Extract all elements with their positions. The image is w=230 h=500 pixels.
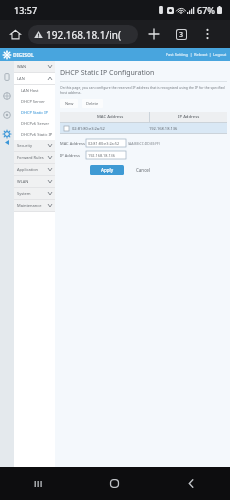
button[interactable]: Back bbox=[153, 467, 230, 500]
button[interactable]: New tab bbox=[144, 24, 164, 44]
button[interactable]: Tabs: 3 bbox=[171, 24, 191, 44]
staticText: IP Address bbox=[178, 114, 200, 120]
staticText: MAC Address bbox=[60, 141, 86, 146]
staticText: DHCP Static IP bbox=[21, 110, 48, 115]
button[interactable]: Apply bbox=[90, 165, 124, 175]
button[interactable]: Reboot bbox=[194, 52, 208, 57]
staticText: (AA:BB:CC:DD:EE:FF) bbox=[128, 141, 160, 146]
staticText: MAC Address bbox=[97, 114, 124, 120]
button[interactable]: Network bbox=[1, 90, 13, 102]
button[interactable]: Fast Setting bbox=[166, 52, 189, 57]
staticText: Security bbox=[17, 143, 48, 148]
staticText: Delete bbox=[86, 101, 99, 106]
staticText: | bbox=[189, 52, 194, 57]
staticText: DHCP Server bbox=[21, 99, 45, 104]
staticText: LAN Host bbox=[21, 88, 39, 93]
button[interactable]: Select row bbox=[60, 123, 227, 133]
button[interactable]: LAN bbox=[14, 73, 55, 84]
button[interactable]: Status bbox=[1, 71, 13, 83]
staticText: New bbox=[65, 101, 74, 106]
button[interactable]: WLAN bbox=[14, 176, 55, 187]
button[interactable]: Maintenance Diagnos... bbox=[14, 200, 55, 211]
staticText: DIGISOL bbox=[13, 52, 34, 59]
button[interactable]: Home bbox=[76, 467, 153, 500]
button[interactable]: Forward Rules bbox=[14, 152, 55, 163]
button[interactable]: Home bbox=[5, 24, 25, 44]
staticText: Forward Rules bbox=[17, 155, 48, 160]
staticText: 67% bbox=[197, 4, 215, 16]
button[interactable]: Settings bbox=[1, 128, 13, 140]
staticText: | bbox=[208, 52, 213, 57]
staticText: 3 bbox=[179, 30, 184, 39]
button[interactable]: Select row bbox=[64, 126, 69, 131]
button[interactable]: LAN Host bbox=[14, 85, 55, 96]
staticText: LAN bbox=[17, 76, 48, 81]
staticText: Apply bbox=[101, 167, 114, 173]
staticText: Maintenance Diagnos... bbox=[17, 203, 48, 208]
staticText: 02:81:80:e3:2a:52 bbox=[88, 141, 120, 146]
button[interactable]: Delete bbox=[82, 99, 103, 108]
button[interactable]: Security bbox=[14, 140, 55, 151]
button[interactable]: System Management bbox=[14, 188, 55, 199]
button[interactable]: Recent apps bbox=[0, 467, 76, 500]
button[interactable]: 192.168.18.136 bbox=[86, 151, 126, 159]
staticText: System Management bbox=[17, 191, 48, 196]
staticText: IP Address bbox=[60, 153, 86, 158]
staticText: DHCPv6 Server bbox=[21, 121, 50, 126]
button[interactable]: 192.168.18.1/in( bbox=[28, 25, 138, 44]
staticText: 13:57 bbox=[14, 4, 38, 16]
staticText: DHCP Static IP Configuration bbox=[60, 68, 155, 78]
staticText: 192.168.18.136 bbox=[88, 153, 115, 158]
button[interactable]: DHCPv6 Static IP bbox=[14, 129, 55, 140]
staticText: WLAN bbox=[17, 179, 48, 184]
staticText: On this page, you can configure the rese… bbox=[60, 85, 227, 95]
button[interactable]: Logout bbox=[213, 52, 227, 57]
staticText: DHCPv6 Static IP bbox=[21, 132, 53, 137]
staticText: 02:81:80:e3:2a:52 bbox=[72, 126, 105, 131]
button[interactable]: More options bbox=[197, 24, 217, 44]
staticText: Cancel bbox=[136, 167, 151, 173]
staticText: 192.168.18.136 bbox=[149, 126, 178, 131]
staticText: 192.168.18.1/in( bbox=[46, 28, 121, 42]
button[interactable]: DHCP Static IP bbox=[14, 107, 55, 118]
button[interactable]: DHCPv6 Server bbox=[14, 118, 55, 129]
button[interactable]: New bbox=[60, 99, 78, 108]
button[interactable]: Security bbox=[1, 109, 13, 121]
staticText: WAN bbox=[17, 64, 48, 69]
staticText: Application bbox=[17, 167, 48, 172]
button[interactable]: DHCP Server bbox=[14, 96, 55, 107]
button[interactable]: 02:81:80:e3:2a:52 bbox=[86, 139, 126, 147]
button[interactable]: WAN bbox=[14, 61, 55, 72]
button[interactable]: Cancel bbox=[132, 165, 155, 175]
button[interactable]: Application bbox=[14, 164, 55, 175]
